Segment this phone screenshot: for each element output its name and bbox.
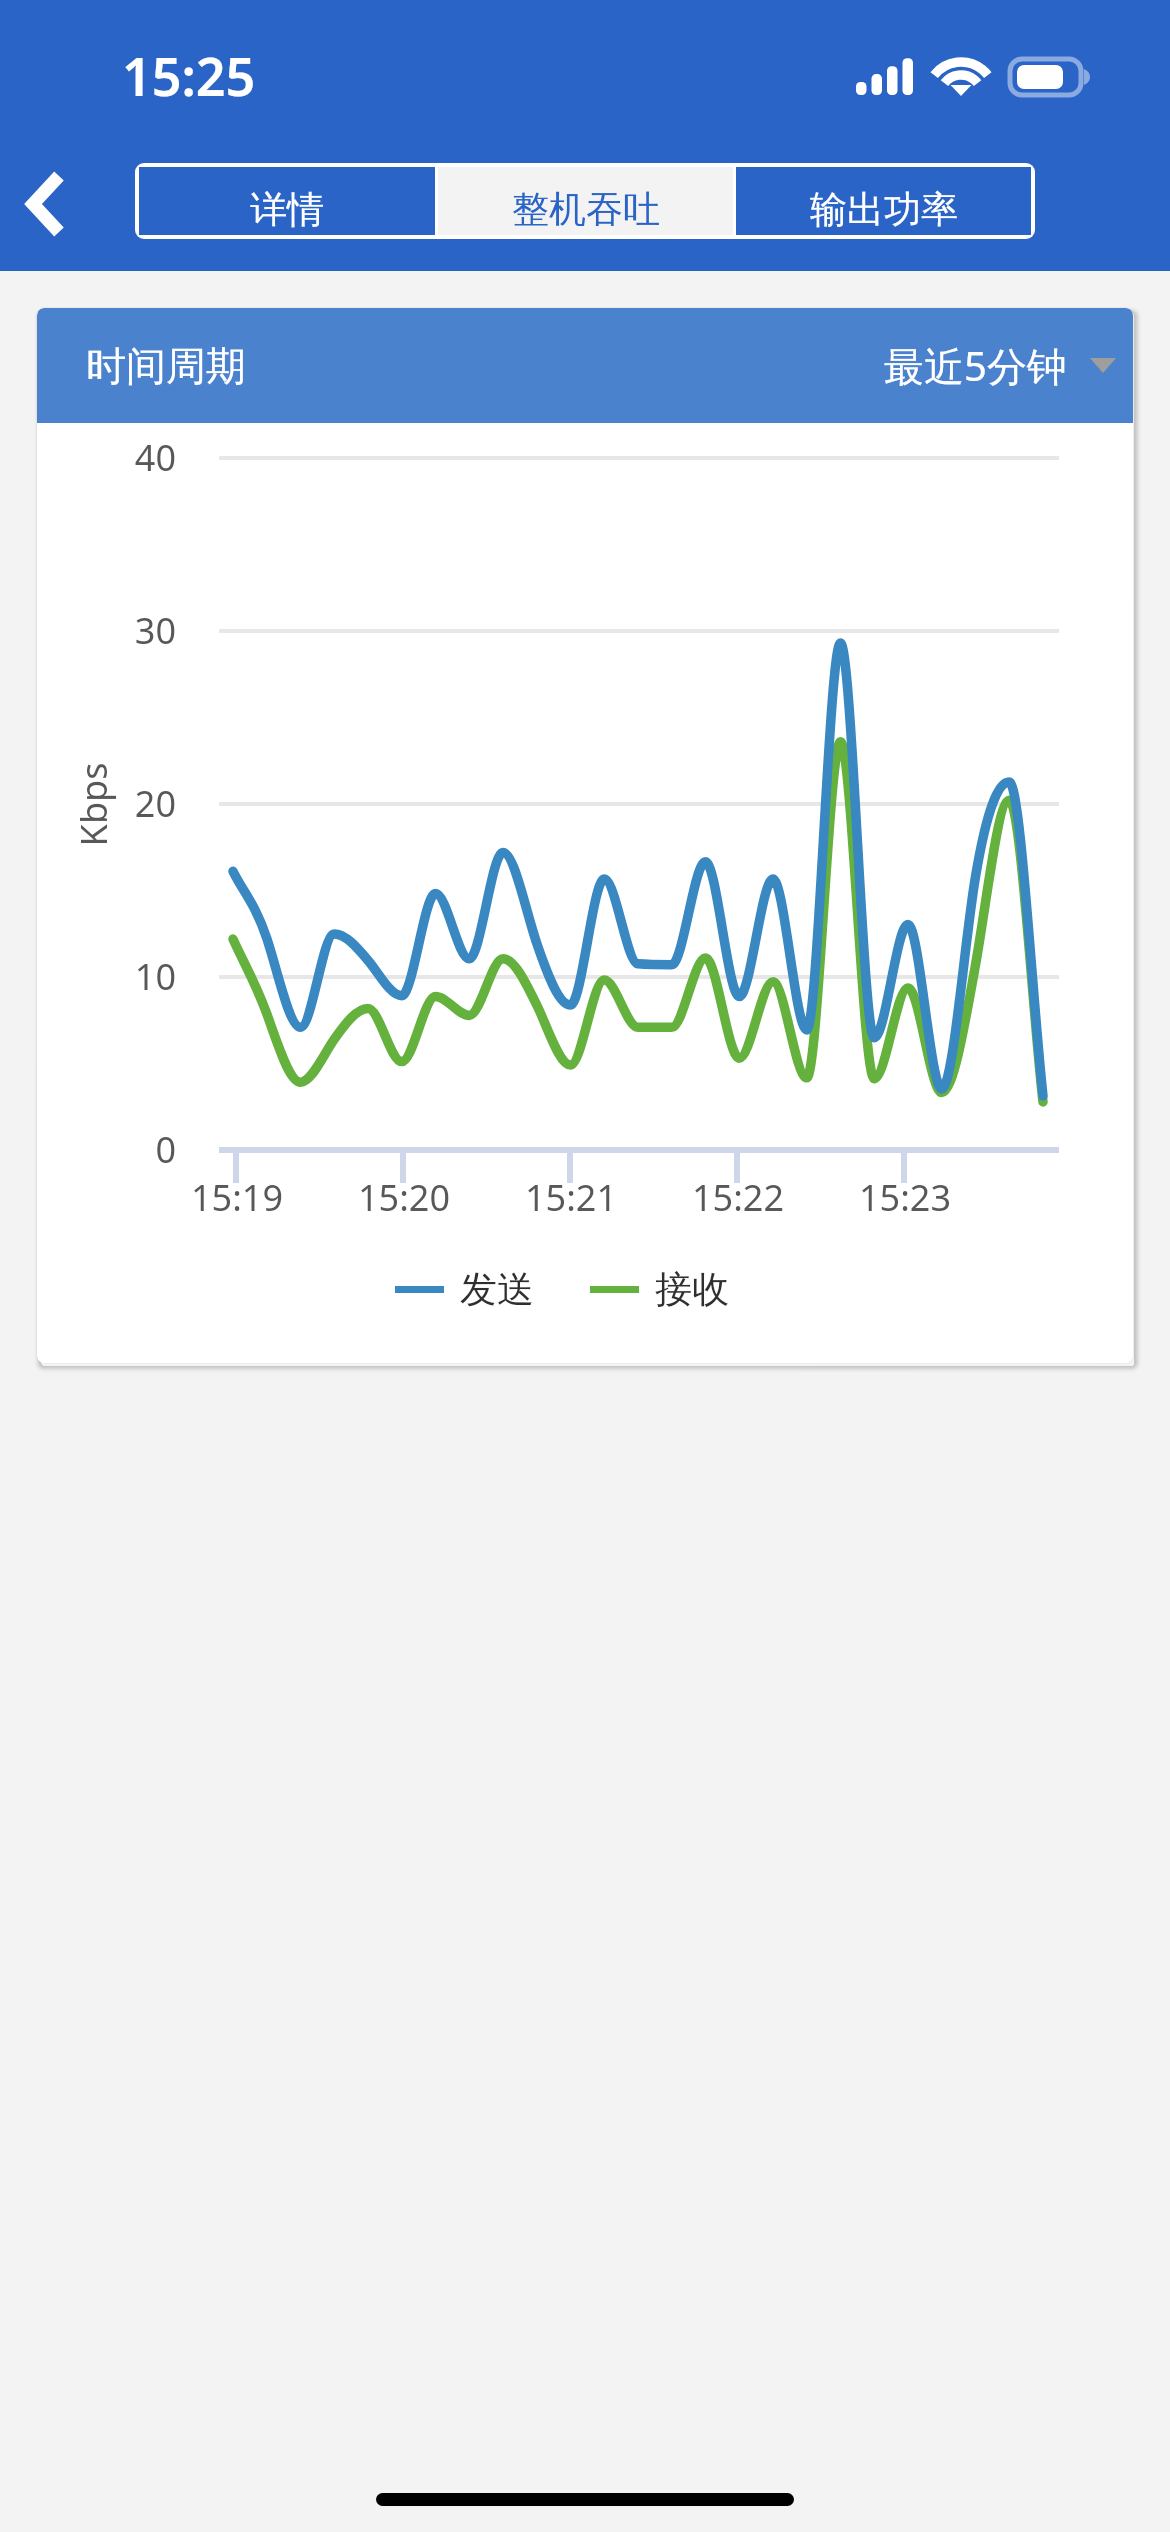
button[interactable]: 详情 [139,167,435,235]
staticText: 输出功率 [810,186,958,233]
button[interactable]: 时间周期 [37,308,1133,423]
staticText: 详情 [250,186,324,233]
staticText: Kbps [68,724,117,884]
staticText: 15:20 [324,1173,484,1222]
staticText: 整机吞吐 [512,186,660,233]
staticText: 15:23 [825,1173,985,1222]
staticText: 最近5分钟 [884,338,1067,393]
staticText: 发送 [460,1266,534,1313]
staticText: 10 [76,952,176,1001]
staticText: 30 [76,606,176,655]
staticText: 接收 [655,1266,729,1313]
button[interactable]: 输出功率 [736,167,1031,235]
staticText: 0 [76,1125,176,1174]
staticText: 15:25 [122,40,256,111]
staticText: 40 [76,433,176,482]
staticText: 20 [76,779,176,828]
staticText: 15:21 [491,1173,651,1222]
button[interactable]: Back [0,151,110,251]
staticText: 15:19 [157,1173,317,1222]
button[interactable]: 整机吞吐 [438,167,733,235]
staticText: 15:22 [658,1173,818,1222]
staticText: 时间周期 [86,341,246,391]
